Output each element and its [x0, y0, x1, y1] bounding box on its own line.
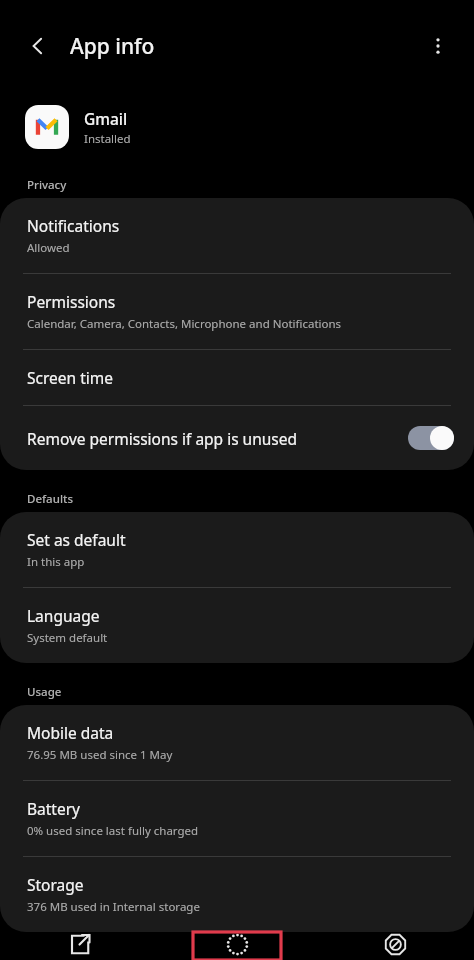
staticText: Notifications [27, 215, 120, 236]
button[interactable]: Gmail [0, 92, 474, 162]
staticText: In this app [27, 554, 85, 570]
button[interactable]: Battery [0, 781, 474, 856]
staticText: 376 MB used in Internal storage [27, 899, 200, 915]
staticText: Permissions [27, 291, 116, 312]
staticText: Privacy [27, 177, 67, 193]
staticText: Set as default [27, 529, 126, 550]
staticText: 0% used since last fully charged [27, 823, 199, 839]
button[interactable]: Set as default [0, 512, 474, 587]
staticText: Usage [27, 684, 62, 700]
staticText: System default [27, 630, 108, 646]
staticText: App info [70, 32, 155, 61]
button[interactable]: Open [35, 932, 123, 960]
staticText: Battery [27, 798, 81, 819]
staticText: Mobile data [27, 722, 114, 743]
staticText: Language [27, 605, 100, 626]
staticText: Storage [27, 874, 84, 895]
button[interactable]: More options [414, 22, 462, 70]
staticText: Remove permissions if app is unused [27, 428, 400, 449]
staticText: Calendar, Camera, Contacts, Microphone a… [27, 316, 342, 332]
button[interactable]: Disable [193, 932, 281, 960]
button[interactable]: Force stop [351, 932, 439, 960]
button[interactable]: Screen time [0, 350, 474, 405]
button[interactable]: Mobile data [0, 705, 474, 780]
staticText: Gmail [84, 108, 128, 129]
staticText: Allowed [27, 240, 70, 256]
button[interactable]: Storage [0, 857, 474, 932]
staticText: 76.95 MB used since 1 May [27, 747, 173, 763]
button[interactable]: Remove permissions if app is unused [0, 406, 474, 470]
button[interactable]: Notifications [0, 198, 474, 273]
staticText: Screen time [27, 367, 113, 388]
staticText: Defaults [27, 491, 73, 507]
button[interactable]: Language [0, 588, 474, 663]
button[interactable]: Permissions [0, 274, 474, 349]
button[interactable]: Back [14, 22, 62, 70]
staticText: Installed [84, 131, 131, 147]
